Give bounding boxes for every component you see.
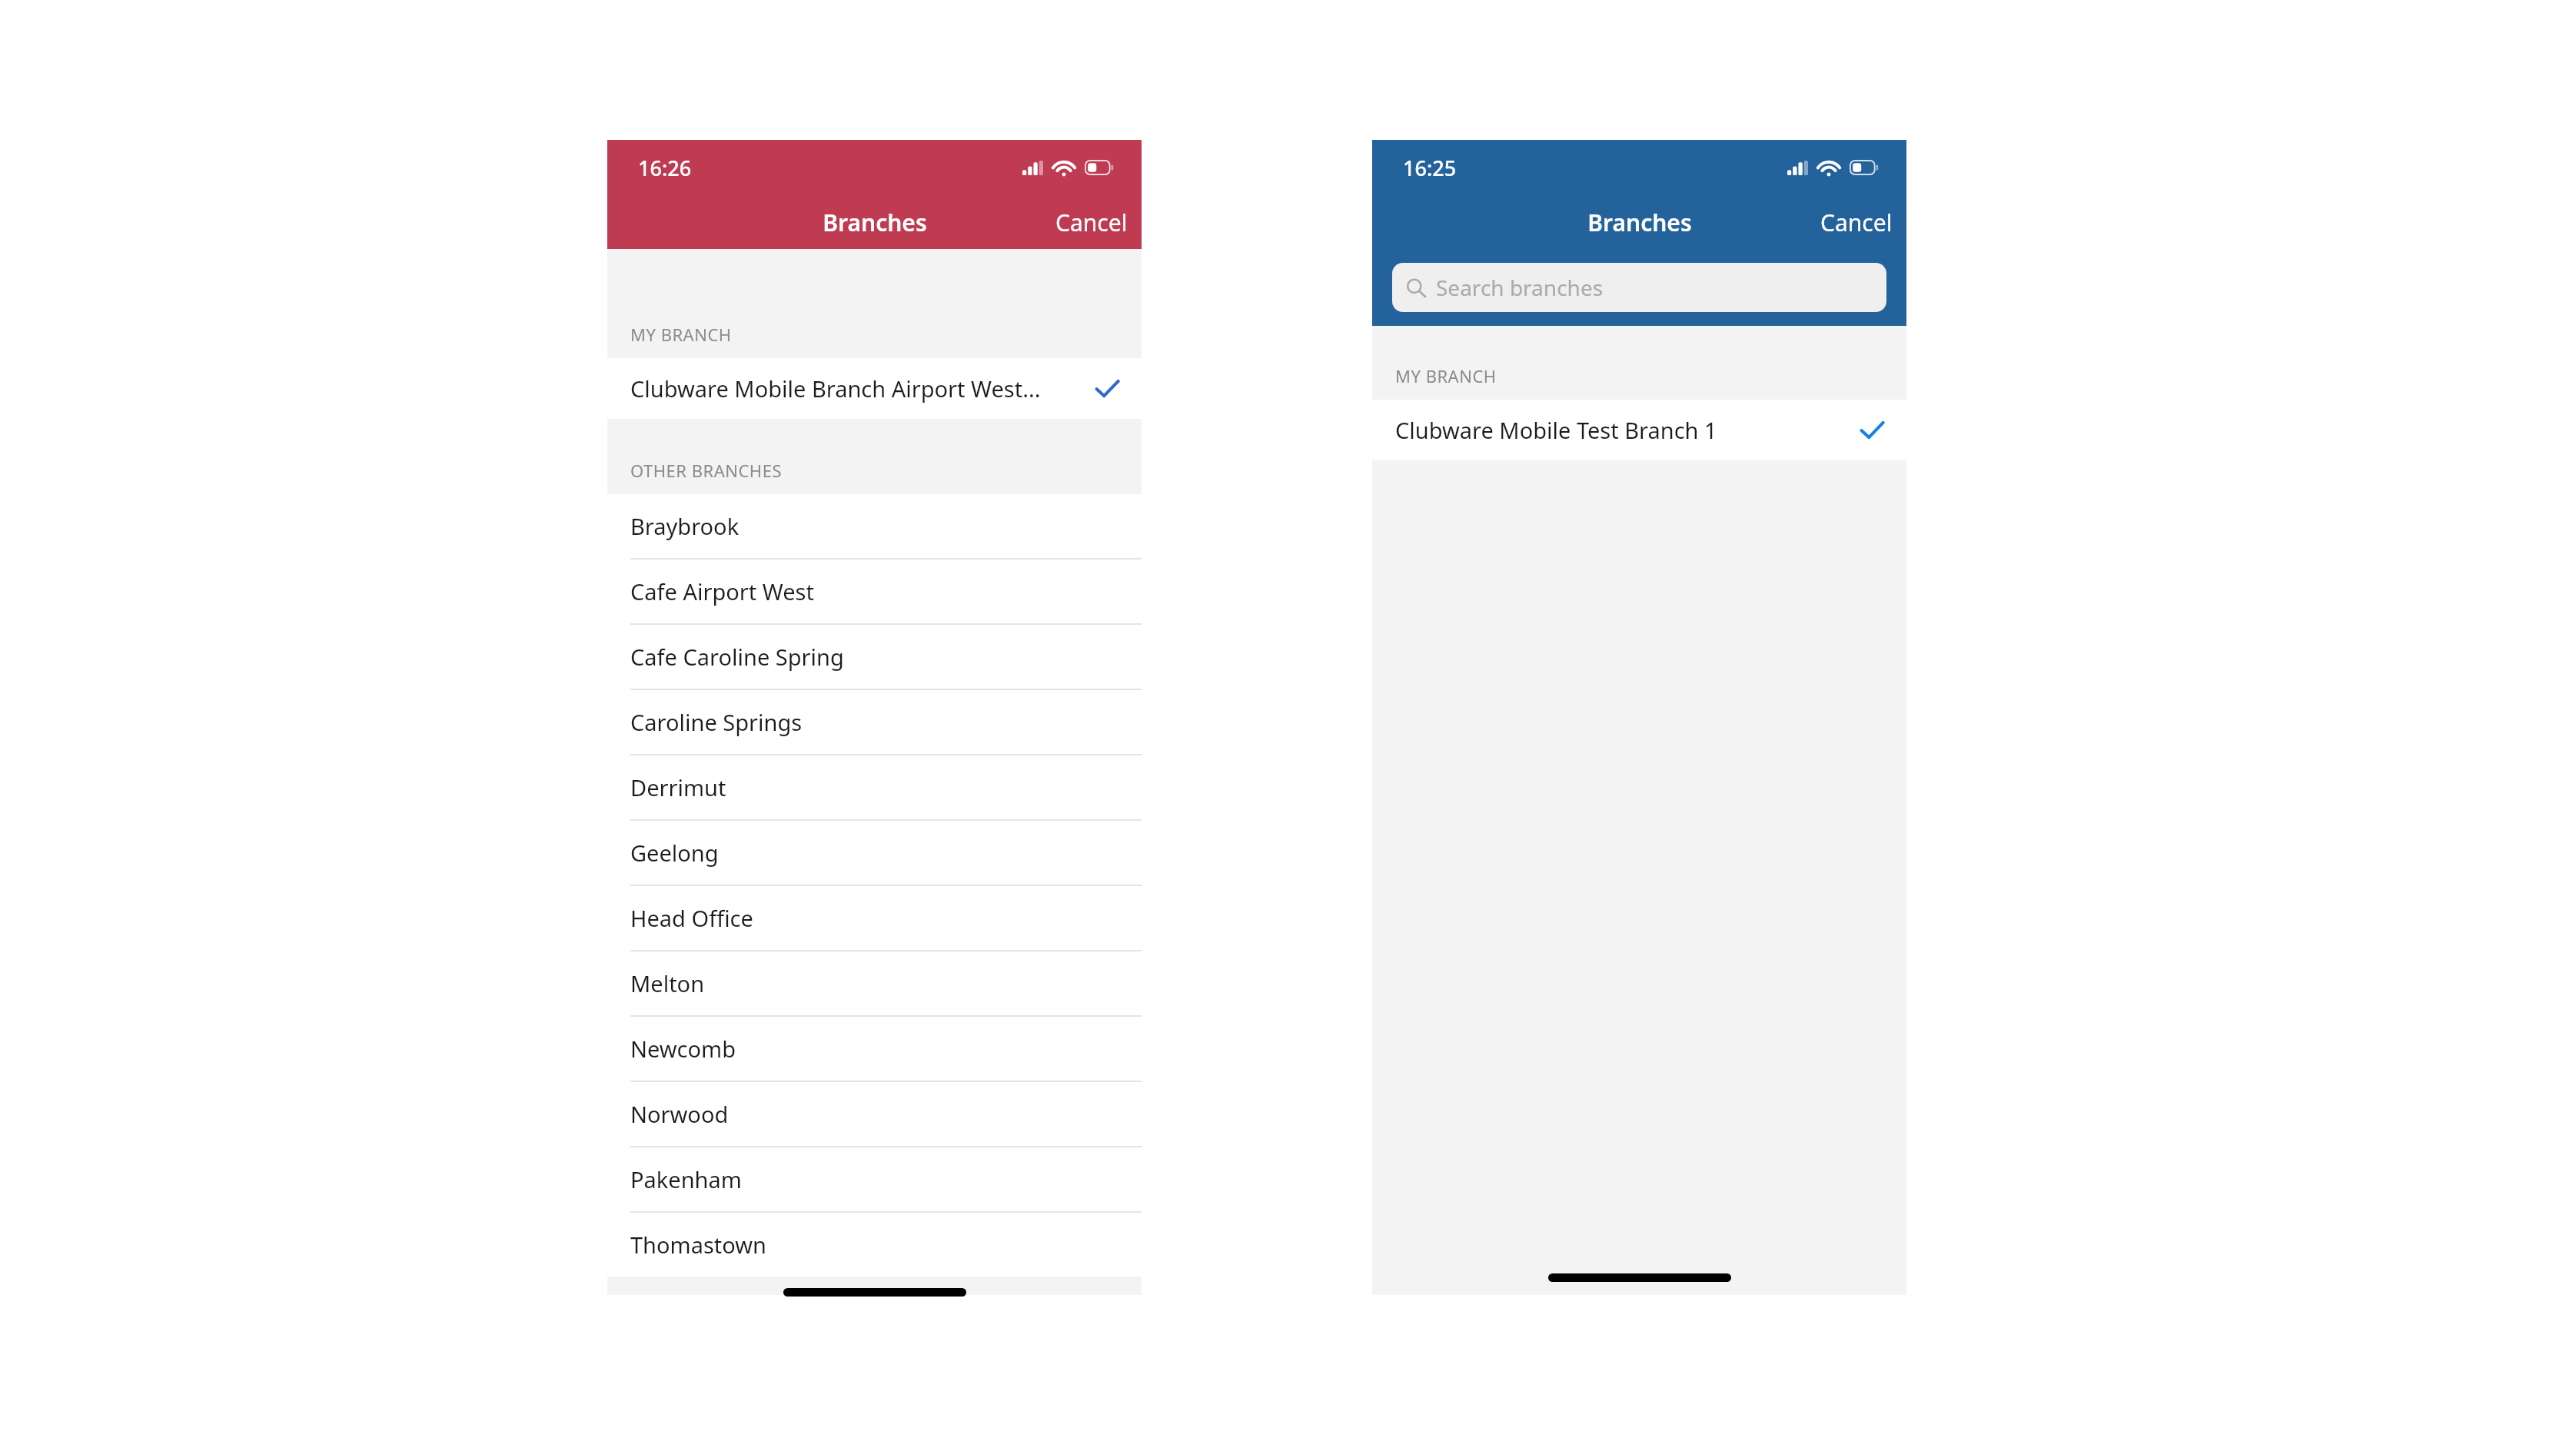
staticText: Head Office <box>630 903 1120 933</box>
button[interactable]: Pakenham <box>607 1147 1142 1211</box>
button[interactable]: Geelong <box>607 821 1142 885</box>
staticText: Caroline Springs <box>630 707 1120 737</box>
button[interactable]: Search branches <box>1392 263 1886 312</box>
staticText: Clubware Mobile Test Branch 1 <box>1395 415 1860 445</box>
staticText: Thomastown <box>630 1230 1120 1260</box>
staticText: Geelong <box>630 838 1120 868</box>
staticText: Cafe Caroline Spring <box>630 642 1120 672</box>
staticText: 16:26 <box>638 154 692 182</box>
staticText: Branches <box>1587 207 1692 238</box>
other: Selected <box>1860 417 1885 443</box>
button[interactable]: Derrimut <box>607 755 1142 819</box>
staticText: Norwood <box>630 1099 1120 1129</box>
staticText: Pakenham <box>630 1164 1120 1194</box>
staticText: Branches <box>823 207 927 238</box>
staticText: MY BRANCH <box>1395 364 1497 387</box>
button[interactable]: Cafe Caroline Spring <box>607 625 1142 689</box>
button[interactable]: Melton <box>607 951 1142 1015</box>
button[interactable]: Braybrook <box>607 494 1142 558</box>
button[interactable]: Norwood <box>607 1082 1142 1146</box>
staticText: Cafe Airport West <box>630 576 1120 606</box>
staticText: Search branches <box>1436 273 1604 302</box>
button[interactable]: Cancel <box>1807 198 1906 247</box>
button[interactable]: Clubware Mobile Branch Airport West... <box>607 358 1142 419</box>
staticText: Melton <box>630 968 1120 998</box>
staticText: Derrimut <box>630 772 1120 802</box>
staticText: MY BRANCH <box>630 323 732 346</box>
other: Selected <box>1095 376 1120 401</box>
button[interactable]: Newcomb <box>607 1017 1142 1081</box>
button[interactable]: Thomastown <box>607 1213 1142 1277</box>
button[interactable]: Head Office <box>607 886 1142 950</box>
staticText: Cancel <box>1820 207 1893 238</box>
staticText: 16:25 <box>1403 154 1457 182</box>
staticText: Cancel <box>1055 207 1128 238</box>
staticText: Clubware Mobile Branch Airport West... <box>630 374 1095 403</box>
button[interactable]: Cafe Airport West <box>607 559 1142 623</box>
staticText: Braybrook <box>630 511 1120 541</box>
staticText: OTHER BRANCHES <box>630 459 782 482</box>
button[interactable]: Cancel <box>1042 198 1142 247</box>
staticText: Newcomb <box>630 1034 1120 1064</box>
button[interactable]: Clubware Mobile Test Branch 1 <box>1372 400 1906 460</box>
button[interactable]: Caroline Springs <box>607 690 1142 754</box>
